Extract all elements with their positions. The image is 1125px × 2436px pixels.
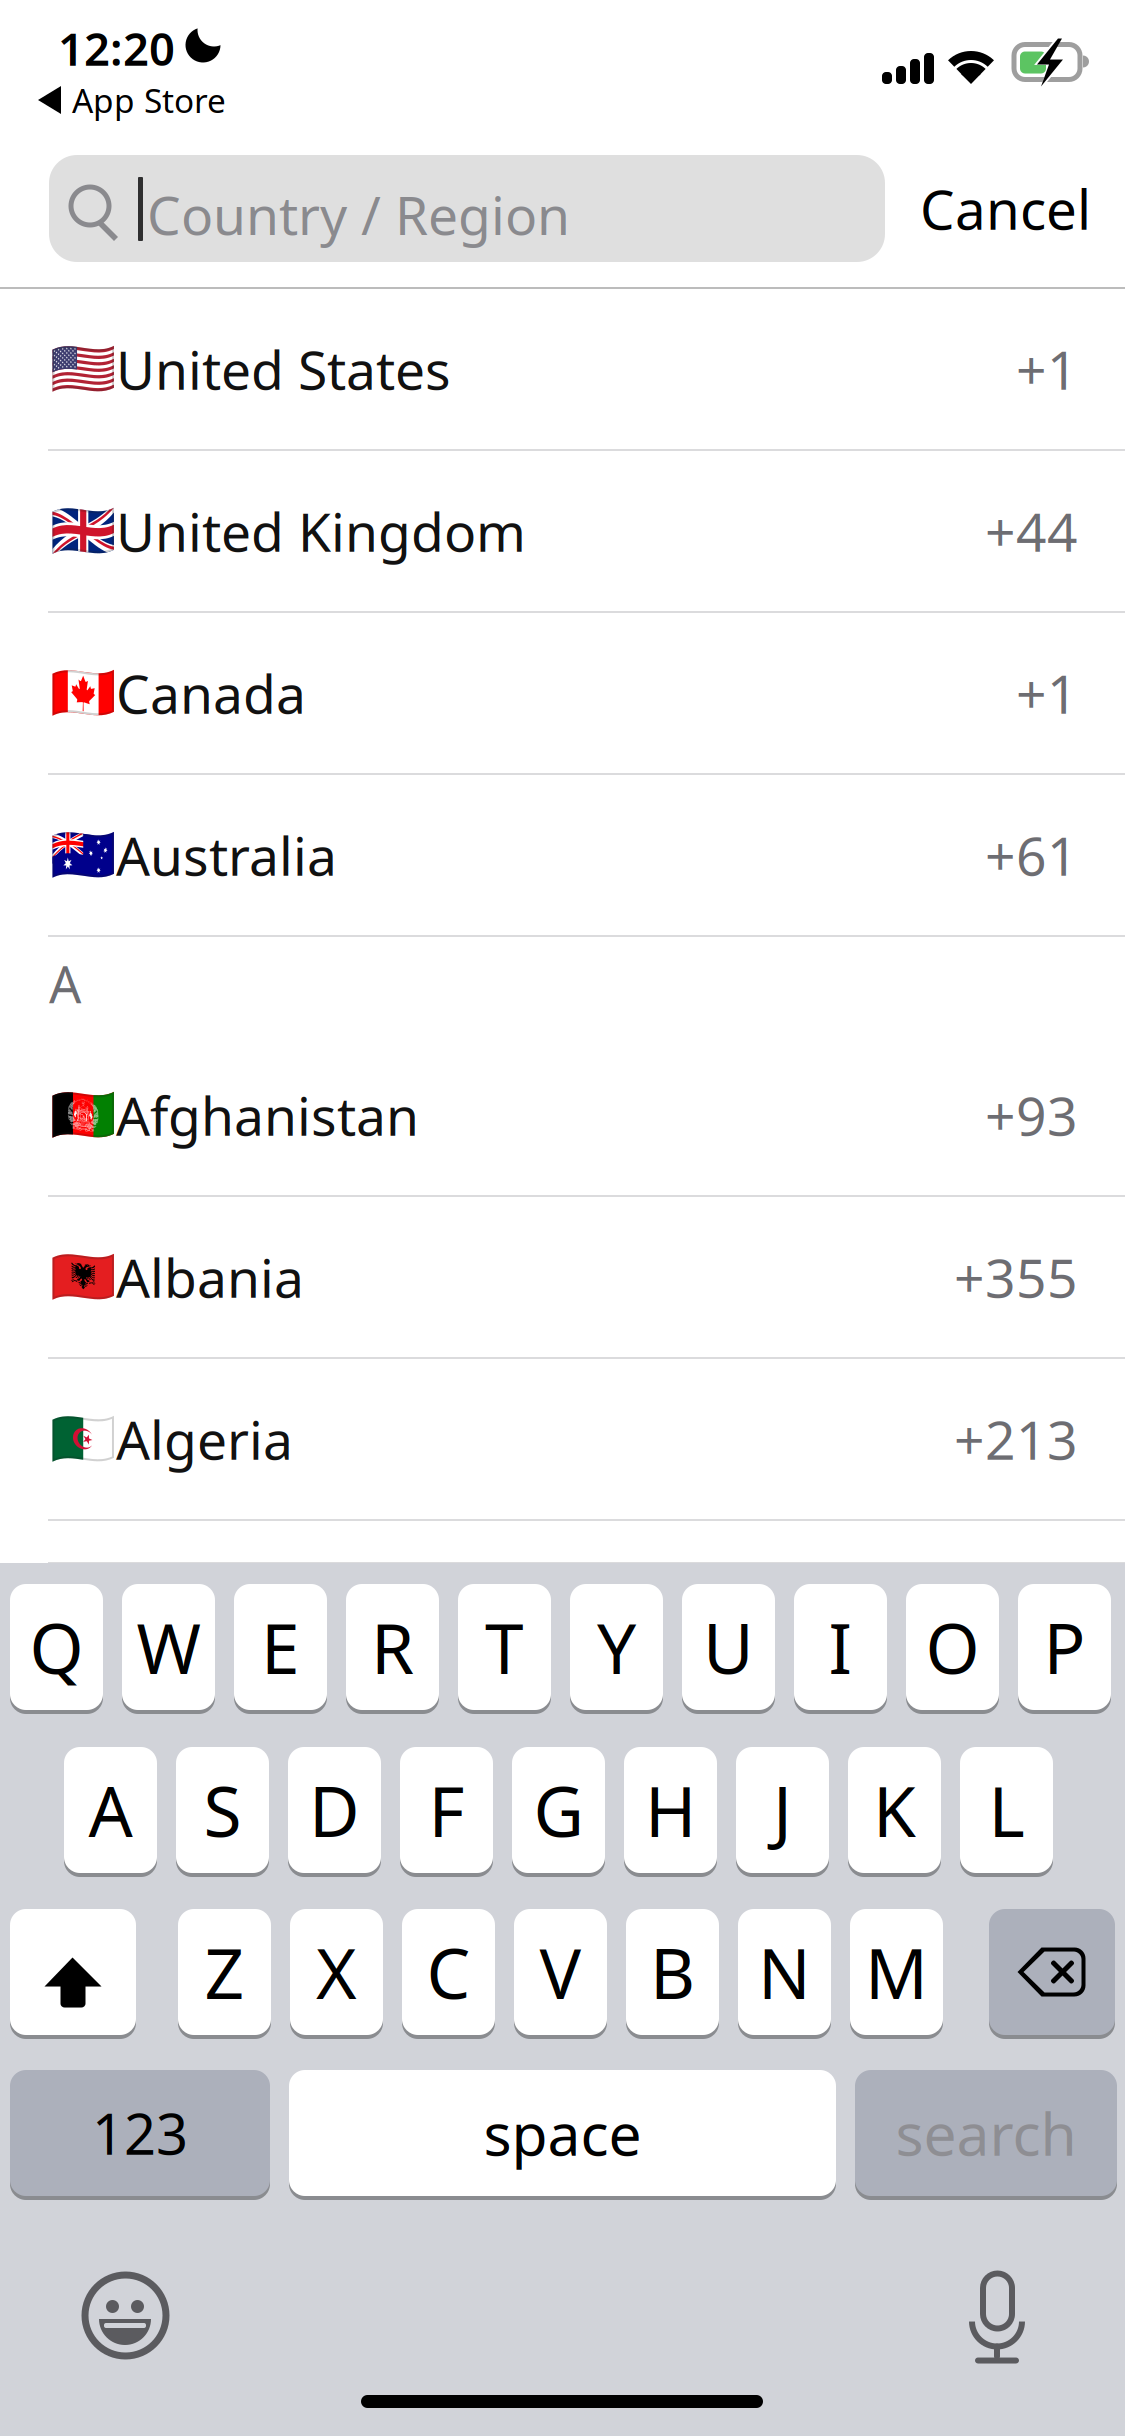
- staticText: App Store: [72, 78, 226, 122]
- button[interactable]: Country / Region: [49, 155, 885, 262]
- staticText: 🇺🇸: [50, 338, 116, 399]
- staticText: P: [1043, 1601, 1085, 1693]
- staticText: United States: [116, 334, 451, 404]
- button[interactable]: 123: [10, 2068, 270, 2198]
- staticText: G: [533, 1764, 583, 1856]
- button[interactable]: Dictation: [969, 2256, 1026, 2346]
- staticText: A: [49, 950, 81, 1017]
- staticText: N: [758, 1926, 811, 2018]
- button[interactable]: 🇩🇿: [0, 1359, 1125, 1521]
- button[interactable]: N: [738, 1907, 831, 2037]
- staticText: X: [316, 1926, 357, 2018]
- staticText: 🇦🇱: [50, 1246, 116, 1307]
- button[interactable]: search: [855, 2068, 1117, 2198]
- staticText: I: [828, 1601, 852, 1693]
- staticText: 🇬🇧: [50, 500, 116, 561]
- button[interactable]: R: [346, 1582, 439, 1712]
- button[interactable]: W: [122, 1582, 215, 1712]
- staticText: L: [988, 1764, 1024, 1856]
- button[interactable]: S: [176, 1745, 269, 1875]
- staticText: J: [773, 1764, 792, 1856]
- button[interactable]: G: [512, 1745, 605, 1875]
- button[interactable]: I: [794, 1582, 887, 1712]
- button[interactable]: Shift: [10, 1907, 136, 2037]
- button[interactable]: Q: [10, 1582, 103, 1712]
- button[interactable]: 🇦🇱: [0, 1197, 1125, 1359]
- staticText: Country / Region: [147, 179, 570, 250]
- staticText: Afghanistan: [116, 1080, 419, 1150]
- staticText: +61: [985, 820, 1078, 890]
- button[interactable]: X: [290, 1907, 383, 2037]
- staticText: Q: [29, 1601, 83, 1693]
- button[interactable]: E: [234, 1582, 327, 1712]
- button[interactable]: 🇺🇸: [0, 289, 1125, 451]
- staticText: United Kingdom: [116, 496, 526, 566]
- staticText: search: [895, 2094, 1076, 2172]
- button[interactable]: 🇦🇺: [0, 775, 1125, 937]
- staticText: Y: [597, 1601, 636, 1693]
- staticText: D: [309, 1764, 360, 1856]
- button[interactable]: 🇬🇧: [0, 451, 1125, 613]
- staticText: R: [371, 1601, 414, 1693]
- staticText: W: [136, 1601, 200, 1693]
- staticText: C: [426, 1926, 470, 2018]
- button[interactable]: M: [850, 1907, 943, 2037]
- staticText: 🇦🇺: [50, 824, 116, 885]
- staticText: B: [650, 1926, 695, 2018]
- button[interactable]: space: [289, 2068, 836, 2198]
- staticText: Cancel: [920, 172, 1091, 245]
- button[interactable]: O: [906, 1582, 999, 1712]
- staticText: U: [703, 1601, 754, 1693]
- button[interactable]: Z: [178, 1907, 271, 2037]
- staticText: +93: [985, 1080, 1078, 1150]
- staticText: +1: [1016, 658, 1078, 728]
- button[interactable]: P: [1018, 1582, 1111, 1712]
- staticText: O: [925, 1601, 979, 1693]
- staticText: T: [485, 1601, 524, 1693]
- button[interactable]: K: [848, 1745, 941, 1875]
- staticText: 🇨🇦: [50, 662, 116, 723]
- button[interactable]: B: [626, 1907, 719, 2037]
- button[interactable]: C: [402, 1907, 495, 2037]
- button[interactable]: V: [514, 1907, 607, 2037]
- staticText: 12:20: [58, 18, 175, 78]
- staticText: +355: [954, 1242, 1078, 1312]
- button[interactable]: J: [736, 1745, 829, 1875]
- button[interactable]: D: [288, 1745, 381, 1875]
- staticText: E: [261, 1601, 300, 1693]
- button[interactable]: 🇦🇫: [0, 1035, 1125, 1197]
- staticText: +44: [985, 496, 1078, 566]
- staticText: space: [483, 2094, 641, 2172]
- staticText: 🇩🇿: [50, 1408, 116, 1469]
- staticText: 123: [92, 2096, 188, 2170]
- button[interactable]: Delete: [989, 1907, 1115, 2037]
- staticText: M: [865, 1926, 928, 2018]
- button[interactable]: Y: [570, 1582, 663, 1712]
- staticText: H: [645, 1764, 696, 1856]
- button[interactable]: F: [400, 1745, 493, 1875]
- staticText: +213: [954, 1404, 1078, 1474]
- button[interactable]: T: [458, 1582, 551, 1712]
- staticText: Z: [204, 1926, 244, 2018]
- button[interactable]: Emoji: [85, 2275, 166, 2356]
- button[interactable]: H: [624, 1745, 717, 1875]
- button[interactable]: A: [64, 1745, 157, 1875]
- button[interactable]: 🇨🇦: [0, 613, 1125, 775]
- staticText: Albania: [116, 1242, 304, 1312]
- staticText: 🇦🇫: [50, 1084, 116, 1145]
- button[interactable]: App Store: [38, 78, 226, 122]
- staticText: Algeria: [116, 1404, 293, 1474]
- staticText: Canada: [116, 658, 306, 728]
- button[interactable]: U: [682, 1582, 775, 1712]
- staticText: F: [428, 1764, 464, 1856]
- staticText: S: [203, 1764, 241, 1856]
- staticText: A: [88, 1764, 132, 1856]
- staticText: K: [873, 1764, 916, 1856]
- button[interactable]: L: [960, 1745, 1053, 1875]
- staticText: V: [539, 1926, 581, 2018]
- staticText: Australia: [116, 820, 337, 890]
- button[interactable]: Cancel: [920, 155, 1091, 262]
- staticText: +1: [1016, 334, 1078, 404]
